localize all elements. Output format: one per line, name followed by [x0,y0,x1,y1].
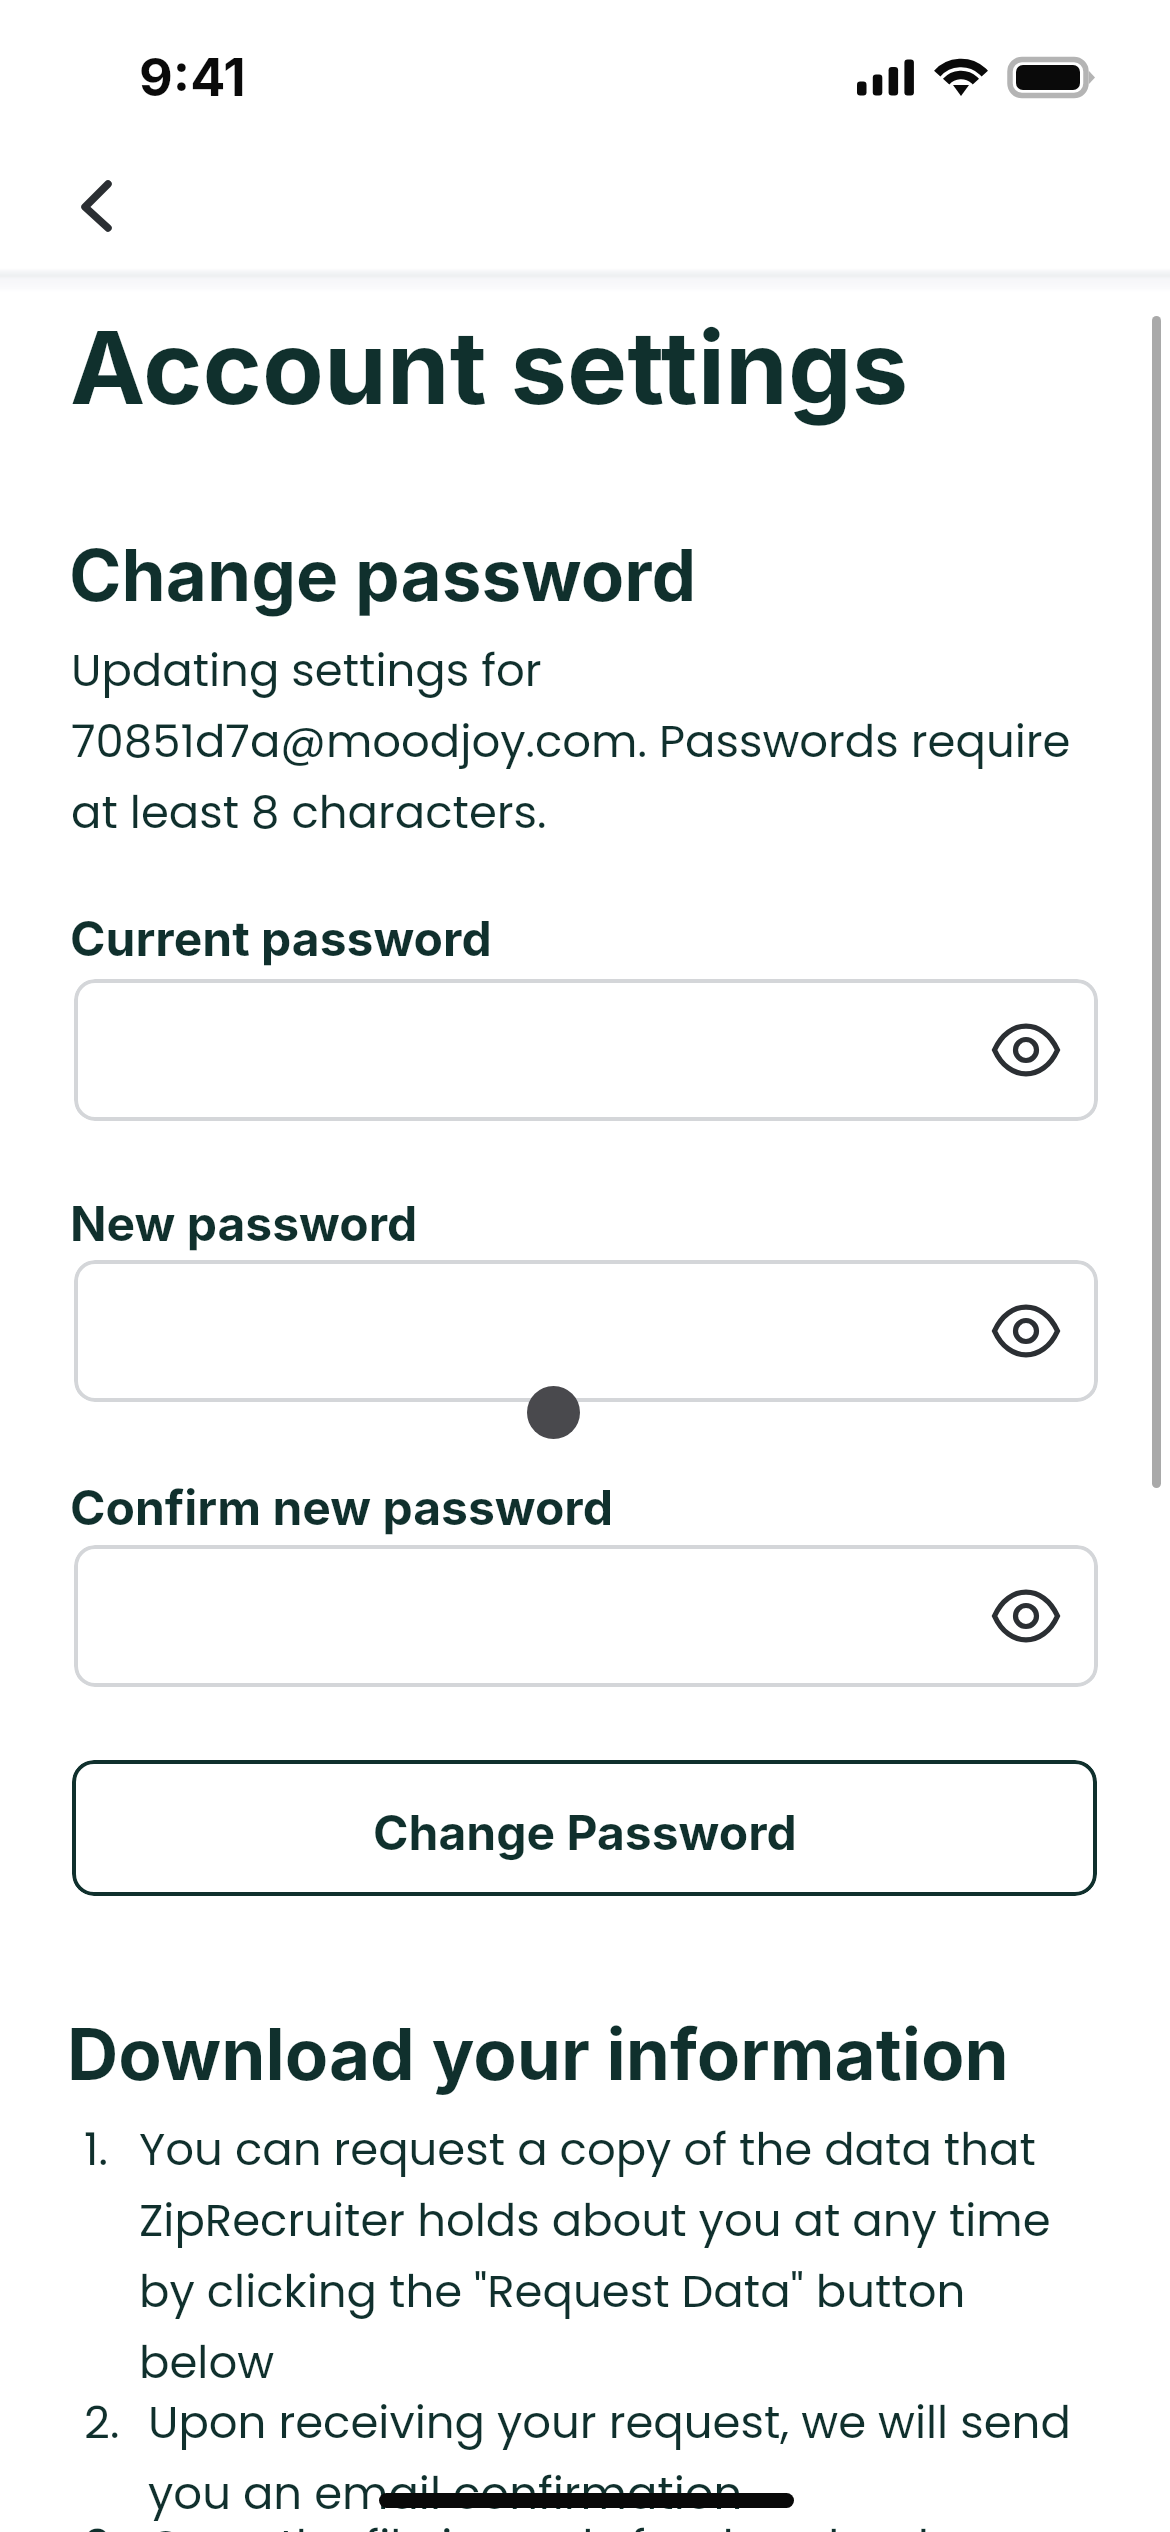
staticText: 2. [84,2386,148,2457]
button[interactable]: Show confirmed password [976,1566,1076,1666]
staticText: 9:41 [139,46,246,109]
button[interactable]: Back [52,160,148,252]
button[interactable]: Show current password [976,1000,1076,1100]
staticText: Updating settings for 70851d7a@moodjoy.c… [71,634,1081,847]
staticText: Upon receiving your request, we will sen… [148,2386,1089,2528]
staticText: Account settings [70,306,909,428]
button[interactable]: Show new password [976,1281,1076,1381]
staticText: New password [70,1194,418,1252]
staticText: Change Password [373,1803,797,1861]
staticText: You can request a copy of the data that … [139,2113,1089,2397]
button[interactable]: Change Password [72,1760,1097,1896]
button[interactable]: current password field [74,979,1098,1121]
staticText: Once the file is ready for download, we … [148,2510,1089,2532]
staticText: 3. [84,2510,148,2532]
button[interactable]: new password field [74,1260,1098,1402]
staticText: Current password [70,909,492,967]
staticText: Change password [69,532,697,618]
staticText: Confirm new password [70,1478,613,1536]
button[interactable]: confirmed password field [74,1545,1098,1687]
staticText: Download your information [67,2011,1009,2097]
staticText: 1. [84,2113,139,2184]
